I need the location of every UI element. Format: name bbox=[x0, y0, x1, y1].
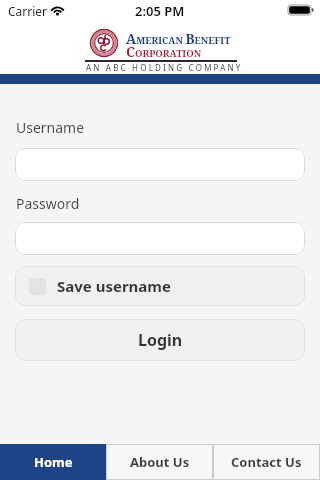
button[interactable] bbox=[15, 222, 305, 255]
button[interactable]: About Us bbox=[106, 444, 213, 480]
staticText: Save username bbox=[57, 276, 171, 296]
staticText: Home bbox=[34, 453, 73, 471]
staticText: Username bbox=[16, 118, 85, 137]
staticText: Carrier bbox=[8, 3, 48, 19]
button[interactable]: Home bbox=[0, 444, 106, 480]
staticText: CORPORATION bbox=[126, 43, 202, 61]
staticText: Contact Us bbox=[231, 453, 302, 471]
button[interactable] bbox=[15, 148, 305, 181]
button[interactable]: Save username bbox=[15, 266, 305, 306]
staticText: AN ABC HOLDING COMPANY bbox=[86, 62, 243, 73]
staticText: AMERICAN BENEFIT bbox=[126, 30, 231, 48]
staticText: 2:05 PM bbox=[135, 2, 185, 20]
staticText: About Us bbox=[130, 453, 190, 471]
staticText: Login bbox=[138, 329, 183, 351]
button[interactable]: Contact Us bbox=[213, 444, 320, 480]
button[interactable]: Login bbox=[15, 319, 305, 361]
staticText: Password bbox=[16, 194, 80, 213]
